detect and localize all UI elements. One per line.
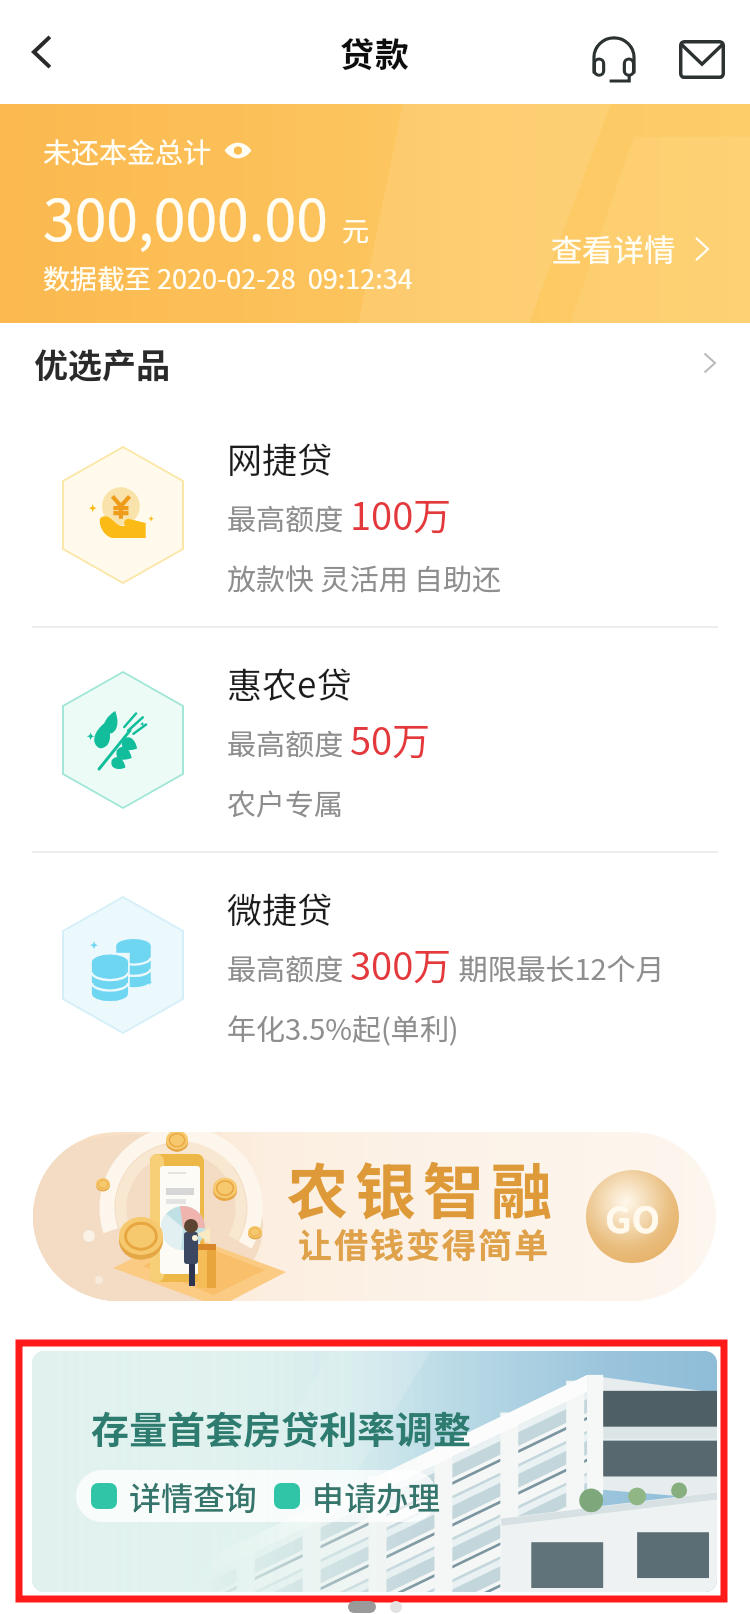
staticText: 数据截至 2020-02-28 09:12:34 <box>43 258 413 297</box>
staticText: 期限最长12个月 <box>452 946 665 988</box>
staticText: 让借钱变得简单 <box>298 1219 550 1268</box>
staticText: 未还本金总计 <box>43 131 212 172</box>
button[interactable]: 优选产品 <box>0 323 750 403</box>
staticText: 农户专属 <box>227 781 344 823</box>
staticText: 优选产品 <box>34 339 170 388</box>
staticText: 50万 <box>350 711 431 766</box>
button[interactable]: Back <box>0 0 88 104</box>
staticText: 最高额度 <box>227 496 350 538</box>
staticText: 惠农e贷 <box>227 657 352 708</box>
staticText: 300万 <box>350 936 452 991</box>
button[interactable]: 微捷贷 <box>0 853 750 1076</box>
button[interactable]: Customer service <box>567 0 662 104</box>
staticText: 最高额度 <box>227 946 350 988</box>
button[interactable]: 农银智融 <box>33 1132 716 1301</box>
staticText: 微捷贷 <box>227 882 333 933</box>
staticText: 放款快 灵活用 自助还 <box>227 556 501 598</box>
staticText: 贷款 <box>340 28 410 77</box>
button[interactable]: 申请办理 <box>274 1473 441 1519</box>
staticText: 网捷贷 <box>227 432 333 483</box>
button[interactable]: 未还本金总计 <box>0 104 750 323</box>
staticText: 最高额度 <box>227 721 350 763</box>
staticText: 元 <box>342 210 369 249</box>
staticText: 300,000.00 <box>43 175 328 258</box>
staticText: GO <box>605 1190 661 1244</box>
staticText: 查看详情 <box>551 226 675 271</box>
staticText: 申请办理 <box>312 1473 441 1519</box>
staticText: 100万 <box>350 486 452 541</box>
button[interactable]: Messages <box>662 0 750 104</box>
staticText: 存量首套房贷利率调整 <box>91 1400 472 1455</box>
button[interactable]: 惠农e贷 <box>0 628 750 851</box>
staticText: 详情查询 <box>129 1473 258 1519</box>
button[interactable]: 网捷贷 <box>0 403 750 626</box>
button[interactable]: 查看详情 <box>551 226 717 271</box>
staticText: 年化3.5%起(单利) <box>227 1006 459 1048</box>
button[interactable]: 存量首套房贷利率调整 <box>32 1351 717 1592</box>
staticText: 农银智融 <box>287 1143 560 1231</box>
button[interactable]: GO <box>586 1170 679 1263</box>
button[interactable]: 详情查询 <box>91 1473 258 1519</box>
